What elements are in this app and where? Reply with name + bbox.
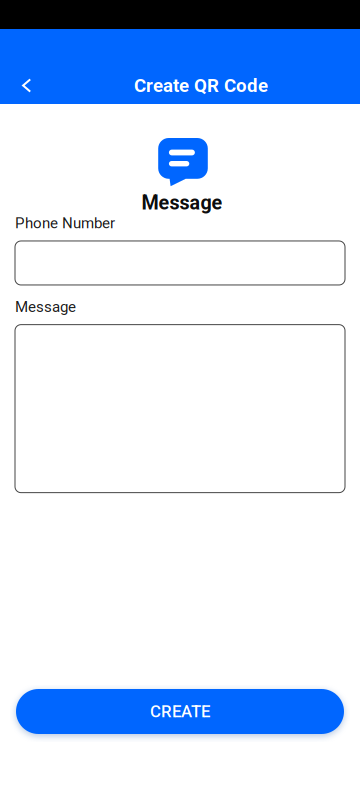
staticText: Message [141,191,222,214]
staticText: CREATE [150,702,210,721]
button[interactable]: Back [3,65,42,106]
staticText: Create QR Code [134,75,268,96]
staticText: Phone Number [15,214,115,232]
button[interactable]: Phone Number [15,241,345,285]
button[interactable]: CREATE [16,689,344,734]
staticText: Message [15,298,76,316]
button[interactable]: Message [15,325,345,493]
